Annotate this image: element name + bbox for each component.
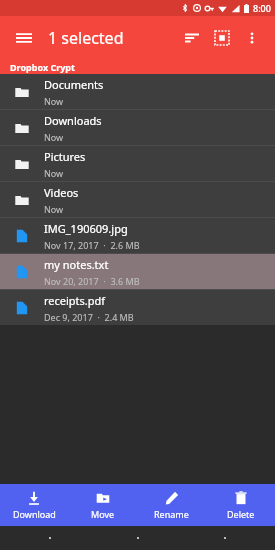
button[interactable]: Navigation — [128, 528, 148, 548]
staticText: Nov 20, 2017 · 3.6 MB — [44, 275, 140, 287]
button[interactable]: Navigation — [215, 528, 235, 548]
button[interactable]: Move — [68, 484, 137, 526]
button[interactable]: Navigation — [40, 528, 60, 548]
button[interactable]: Downloads — [0, 110, 275, 145]
staticText: 1 selected — [48, 27, 124, 49]
button[interactable]: Delete — [206, 484, 275, 526]
staticText: Now — [44, 131, 64, 143]
button[interactable]: Documents — [0, 74, 275, 109]
button[interactable]: receipts.pdf — [0, 290, 275, 325]
staticText: IMG_190609.jpg — [44, 221, 128, 236]
button[interactable]: Pictures — [0, 146, 275, 181]
staticText: Now — [44, 203, 64, 215]
button[interactable]: Navigation menu — [8, 22, 40, 54]
staticText: Rename — [154, 508, 189, 520]
staticText: Now — [44, 167, 64, 179]
staticText: Downloads — [44, 113, 102, 128]
staticText: Delete — [227, 508, 255, 520]
button[interactable]: Download — [0, 484, 68, 526]
staticText: Nov 17, 2017 · 2.6 MB — [44, 239, 140, 251]
staticText: Download — [13, 508, 56, 520]
staticText: Move — [91, 508, 115, 520]
button[interactable]: Videos — [0, 182, 275, 217]
staticText: Documents — [44, 77, 104, 92]
staticText: Dec 9, 2017 · 2.4 MB — [44, 311, 134, 323]
button[interactable]: Select all — [207, 23, 237, 53]
button[interactable]: More options — [237, 23, 267, 53]
staticText: Now — [44, 95, 64, 107]
staticText: 8:00 — [253, 2, 271, 14]
button[interactable]: Sort — [177, 23, 207, 53]
button[interactable]: my notes.txt — [0, 254, 275, 289]
button[interactable]: Rename — [137, 484, 206, 526]
button[interactable]: IMG_190609.jpg — [0, 218, 275, 253]
staticText: Pictures — [44, 149, 86, 164]
staticText: my notes.txt — [44, 257, 109, 272]
staticText: receipts.pdf — [44, 293, 106, 308]
staticText: Videos — [44, 185, 79, 200]
staticText: Dropbox Crypt — [10, 61, 75, 73]
